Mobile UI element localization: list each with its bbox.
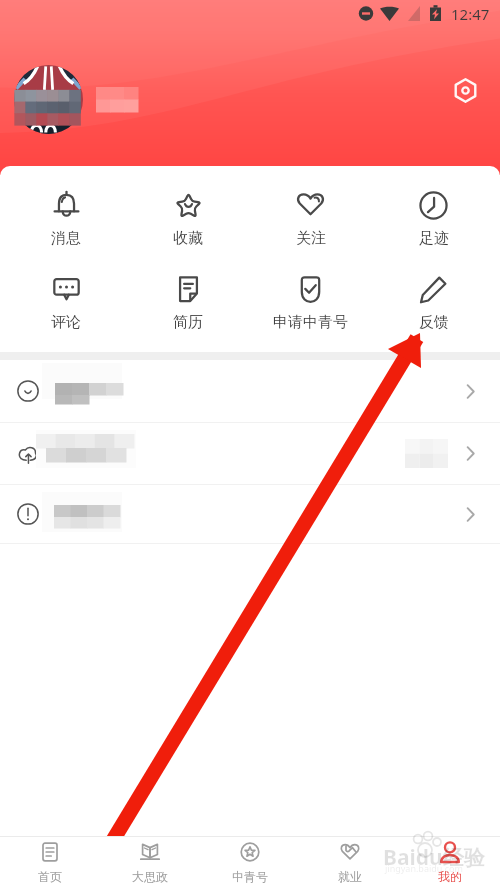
button[interactable]: 收藏 — [127, 191, 249, 248]
button[interactable]: 消息 — [5, 191, 127, 248]
button[interactable] — [0, 485, 500, 543]
button[interactable]: 大思政 — [100, 837, 200, 889]
staticText: 足迹 — [419, 229, 449, 248]
staticText: 评论 — [51, 313, 81, 332]
button[interactable]: 反馈 — [372, 275, 495, 332]
staticText: jingyan.baidu.com — [385, 862, 463, 874]
staticText: 反馈 — [419, 313, 449, 332]
staticText: 消息 — [51, 229, 81, 248]
staticText: 中青号 — [232, 869, 268, 884]
button[interactable]: 中青号 — [200, 837, 300, 889]
staticText: 简历 — [173, 313, 203, 332]
staticText: Baidu经验 — [383, 843, 485, 872]
staticText: 申请中青号 — [273, 313, 348, 332]
button[interactable] — [0, 360, 500, 422]
button[interactable]: 评论 — [5, 275, 127, 332]
button[interactable]: 就业 — [300, 837, 400, 889]
staticText: 大思政 — [132, 869, 168, 884]
staticText: 首页 — [38, 869, 62, 884]
button[interactable] — [0, 423, 500, 484]
button[interactable]: 关注 — [249, 191, 372, 248]
staticText: 关注 — [296, 229, 326, 248]
button[interactable]: 足迹 — [372, 191, 495, 248]
staticText: 12:47 — [451, 4, 490, 24]
staticText: 就业 — [338, 869, 362, 884]
staticText: 收藏 — [173, 229, 203, 248]
button[interactable]: Profile photo — [14, 65, 83, 134]
button[interactable]: Settings — [443, 68, 487, 112]
staticText: 我的 — [438, 869, 462, 884]
button[interactable]: 简历 — [127, 275, 249, 332]
button[interactable]: 我的 — [400, 837, 500, 889]
button[interactable]: 首页 — [0, 837, 100, 889]
button[interactable]: 申请中青号 — [249, 275, 372, 332]
